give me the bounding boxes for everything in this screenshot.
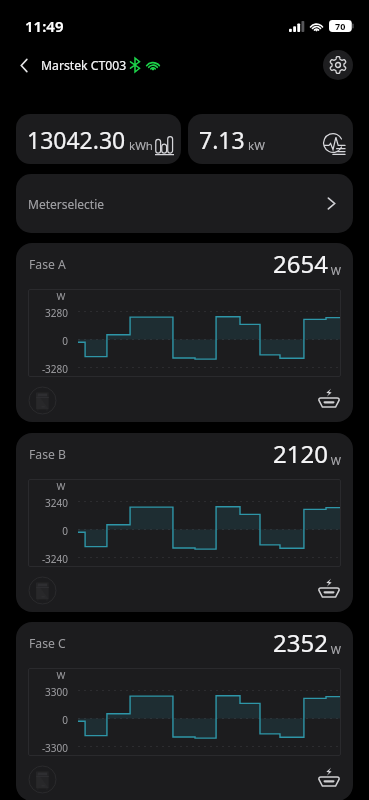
button[interactable]: Power output xyxy=(316,385,342,411)
staticText: 13042.30 xyxy=(27,124,126,155)
button[interactable]: Back xyxy=(11,52,37,78)
staticText: 0 xyxy=(28,334,68,348)
button[interactable]: Meter device xyxy=(28,576,57,605)
button[interactable]: Fase C xyxy=(16,622,353,800)
staticText: 2352 xyxy=(273,626,328,659)
button[interactable]: 13042.30 xyxy=(16,114,181,164)
staticText: kWh xyxy=(126,138,153,154)
button[interactable]: Meter device xyxy=(28,386,57,415)
button[interactable]: Settings xyxy=(323,50,353,80)
staticText: Meterselectie xyxy=(28,196,105,212)
staticText: 70 xyxy=(335,20,346,32)
staticText: 0 xyxy=(28,524,68,538)
staticText: 11:49 xyxy=(25,16,64,36)
staticText: W xyxy=(328,642,342,657)
staticText: W xyxy=(328,453,342,468)
staticText: -3240 xyxy=(28,552,68,566)
button[interactable]: Fase B xyxy=(16,433,353,612)
staticText: W xyxy=(328,263,342,278)
staticText: -3280 xyxy=(28,362,68,376)
button[interactable]: Fase A xyxy=(16,243,353,422)
staticText: -3300 xyxy=(28,741,68,755)
staticText: 2120 xyxy=(273,437,328,470)
button[interactable]: Meter device xyxy=(28,765,57,794)
button[interactable]: Power output xyxy=(316,764,342,790)
other: Open meter selection xyxy=(327,197,336,210)
staticText: W xyxy=(50,290,72,303)
staticText: 2654 xyxy=(273,247,328,280)
staticText: Fase B xyxy=(29,446,66,463)
staticText: 7.13 xyxy=(199,124,245,155)
staticText: 3240 xyxy=(28,496,68,510)
staticText: W xyxy=(50,669,72,682)
staticText: 3300 xyxy=(28,685,68,699)
button[interactable]: 7.13 xyxy=(188,114,353,164)
staticText: Fase C xyxy=(29,635,66,652)
staticText: Fase A xyxy=(29,256,66,273)
staticText: 3280 xyxy=(28,306,68,320)
staticText: 0 xyxy=(28,713,68,727)
button[interactable]: Meterselectie xyxy=(16,174,353,233)
staticText: Marstek CT003 xyxy=(41,57,127,74)
staticText: kW xyxy=(245,138,265,154)
staticText: W xyxy=(50,480,72,493)
button[interactable]: Power output xyxy=(316,575,342,601)
